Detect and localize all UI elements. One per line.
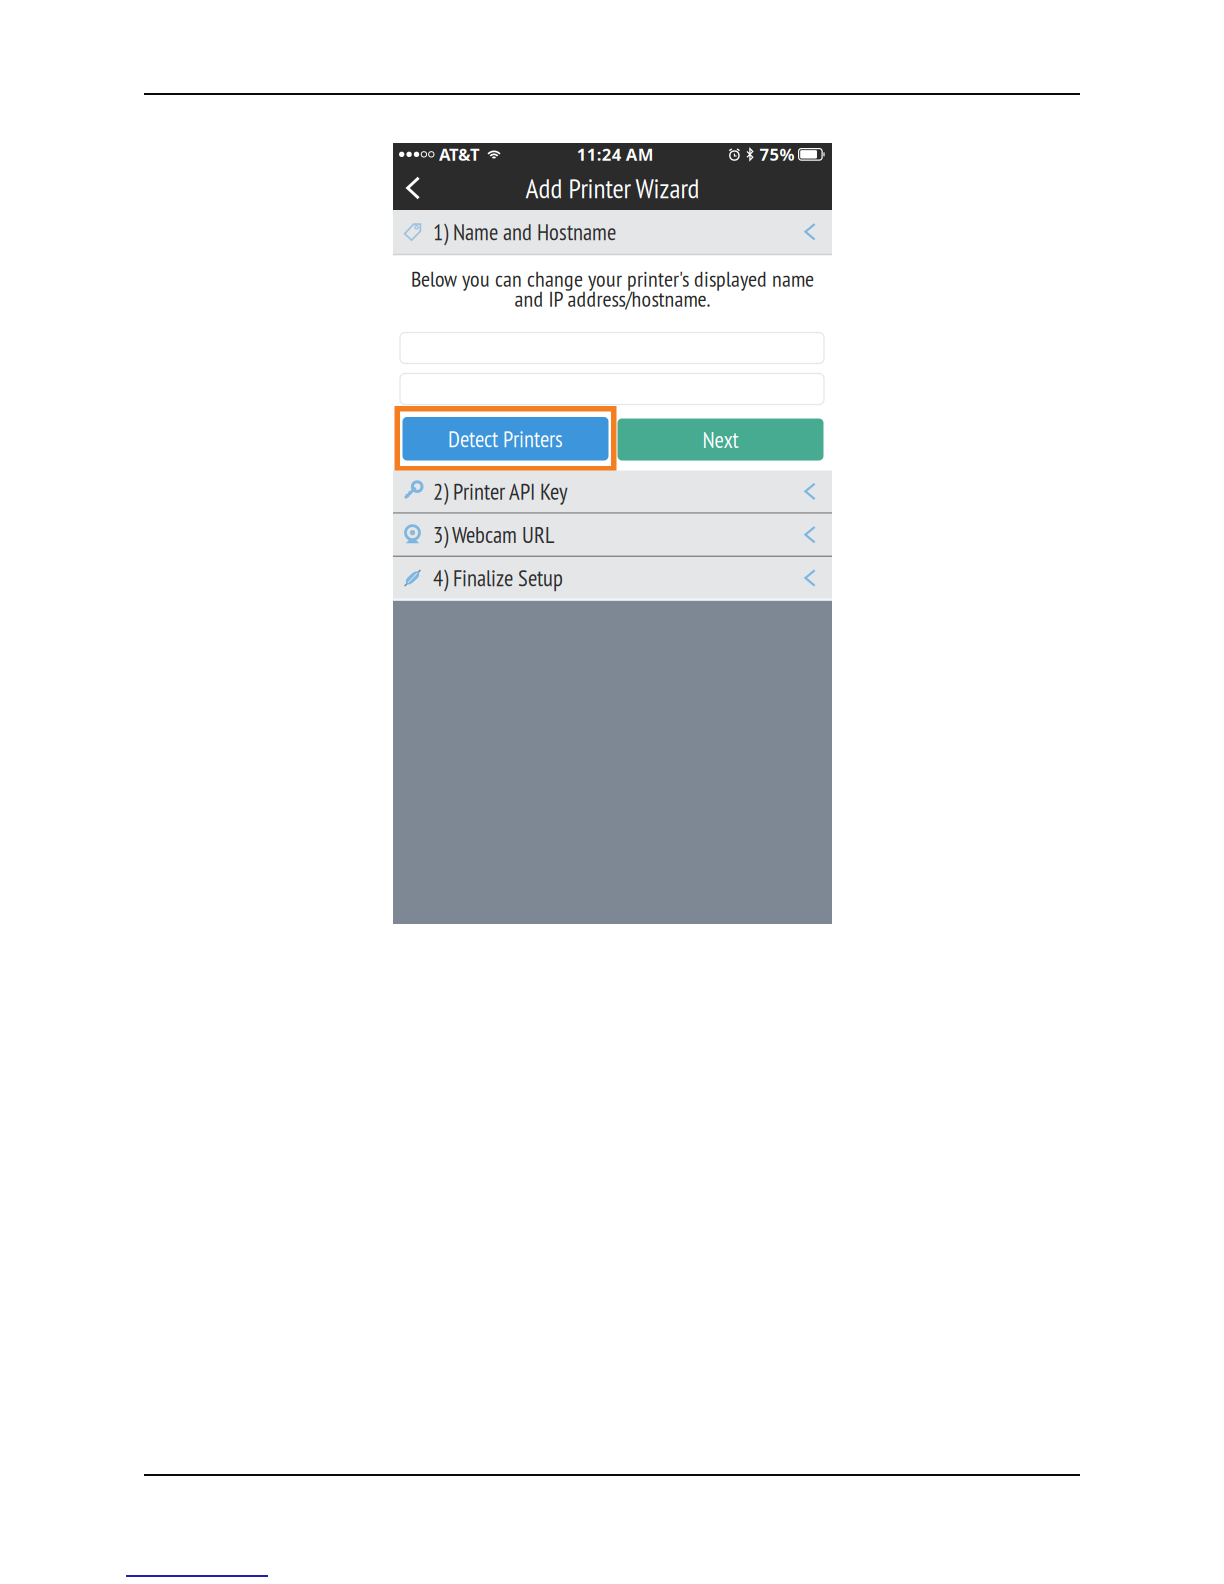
staticText: 2) Printer API Key (433, 477, 568, 506)
button[interactable]: 2) Printer API Key (393, 470, 832, 512)
staticText: 11:24 AM (577, 143, 654, 166)
staticText: AT&T (439, 143, 480, 166)
staticText: 75% (760, 143, 795, 166)
button[interactable]: Detect Printers (394, 406, 616, 471)
staticText: 3) Webcam URL (433, 520, 554, 549)
staticText: 1) Name and Hostname (433, 217, 616, 246)
staticText: Below you can change your printer's disp… (411, 264, 814, 293)
staticText: Detect Printers (448, 424, 563, 453)
button[interactable]: Next (617, 418, 823, 460)
staticText: and IP address/hostname. (514, 284, 710, 313)
staticText: Add Printer Wizard (525, 170, 699, 206)
staticText: 4) Finalize Setup (433, 563, 563, 593)
button[interactable]: 4) Finalize Setup (393, 555, 832, 599)
staticText: Next (702, 425, 738, 454)
button[interactable]: 3) Webcam URL (393, 512, 832, 555)
button[interactable]: 1) Name and Hostname (393, 210, 832, 253)
button[interactable]: Back (393, 166, 433, 210)
